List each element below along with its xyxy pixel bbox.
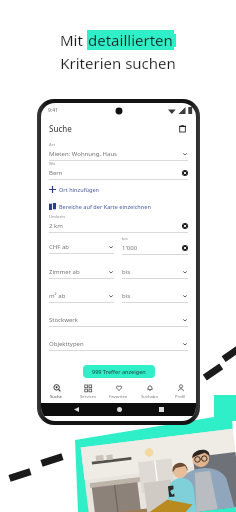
button[interactable]: Stockwerk (49, 309, 188, 327)
staticText: 999 Treffer anzeigen (92, 368, 146, 375)
other: Auswählen (108, 293, 114, 299)
staticText: Suche (49, 123, 72, 134)
staticText: Zimmer ab (49, 268, 80, 276)
staticText: Art (49, 142, 55, 148)
button[interactable]: Favoriten (103, 384, 134, 400)
button[interactable]: Art (41, 142, 196, 161)
other: Löschen (182, 170, 188, 176)
staticText: Wo (49, 161, 56, 167)
staticText: bis (122, 292, 131, 300)
staticText: Stockwerk (49, 316, 78, 324)
staticText: Objekttypen (49, 340, 84, 348)
button[interactable]: 999 Treffer anzeigen (83, 365, 155, 378)
staticText: m² ab (49, 292, 66, 300)
staticText: 9:41 (48, 107, 58, 114)
button[interactable]: Startseite (112, 403, 126, 416)
staticText: Favoriten (109, 394, 128, 400)
button[interactable]: m² ab (49, 285, 114, 303)
button[interactable]: Profil (165, 384, 196, 400)
staticText: Suche (50, 394, 63, 400)
button[interactable]: bis (122, 236, 188, 255)
staticText: Bereiche auf der Karte einzeichnen (59, 203, 151, 210)
button[interactable]: Zurück (69, 403, 83, 416)
other: Auswählen (182, 341, 188, 347)
staticText: Umkreis (49, 214, 66, 220)
other: Auswählen (182, 269, 188, 275)
staticText: Mit (60, 30, 87, 50)
button[interactable]: Umkreis (41, 214, 196, 233)
staticText: CHF ab (49, 243, 69, 251)
staticText: 1'000 (122, 244, 138, 252)
staticText: bis (122, 236, 128, 242)
button[interactable]: bis (122, 261, 188, 279)
button[interactable]: bis (122, 285, 188, 303)
other: Auswählen (108, 244, 114, 250)
button[interactable]: Ort hinzufügen (41, 183, 196, 196)
staticText: 2 km (49, 222, 63, 230)
button[interactable]: Bereiche auf der Karte einzeichnen (41, 200, 196, 212)
staticText: Profil (175, 394, 186, 400)
other: Löschen (182, 245, 188, 251)
button[interactable]: Suche (41, 384, 72, 400)
other: Auswählen (108, 269, 114, 275)
staticText: Services (80, 394, 96, 400)
button[interactable]: Wo (41, 161, 196, 180)
other: Auswählen (182, 317, 188, 323)
other: Auswählen (182, 151, 188, 157)
other: Auswählen (182, 293, 188, 299)
button[interactable]: Suchabo (134, 384, 165, 400)
staticText: detaillierten (88, 30, 173, 50)
button[interactable]: Löschen (176, 122, 188, 134)
staticText: Bern (49, 169, 63, 177)
button[interactable]: Zimmer ab (49, 261, 114, 279)
staticText: bis (122, 268, 131, 276)
staticText: Mieten: Wohnung, Haus (49, 150, 117, 158)
staticText: Suchabo (141, 394, 158, 400)
button[interactable]: CHF ab (49, 236, 114, 254)
button[interactable]: Objekttypen (49, 333, 188, 351)
button[interactable]: Übersicht (154, 403, 168, 416)
button[interactable]: Services (72, 384, 103, 400)
staticText: Ort hinzufügen (59, 186, 100, 193)
other: Löschen (182, 223, 188, 229)
staticText: Kriterien suchen (60, 53, 176, 73)
